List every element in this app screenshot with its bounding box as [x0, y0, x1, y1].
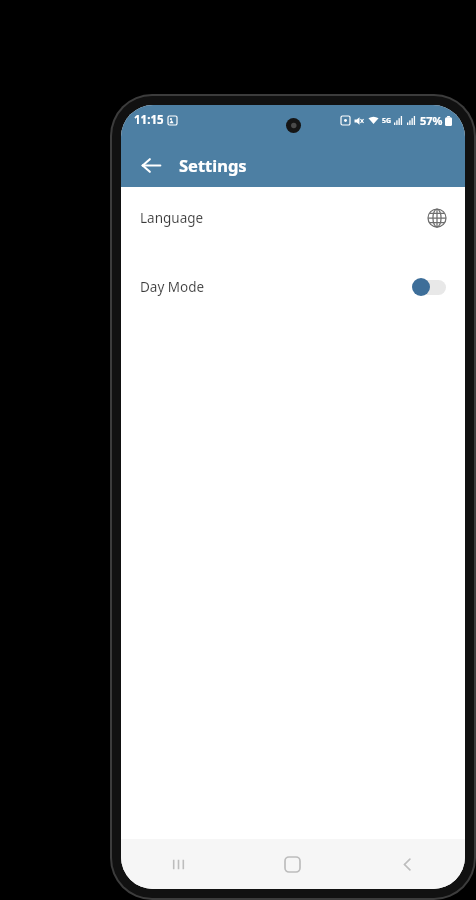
staticText: 11:15 [134, 112, 164, 128]
button[interactable]: Home [235, 839, 350, 889]
other: Language [425, 206, 449, 230]
button[interactable]: Back [133, 147, 169, 183]
button[interactable]: Day Mode toggle [411, 275, 449, 299]
button[interactable]: Recents [121, 839, 235, 889]
button[interactable]: Back [350, 839, 465, 889]
staticText: Day Mode [140, 278, 205, 296]
staticText: 57% [420, 113, 443, 128]
staticText: Settings [179, 154, 247, 176]
button[interactable]: Day Mode [121, 270, 465, 304]
button[interactable]: Language [121, 201, 465, 235]
staticText: 5G [382, 116, 392, 126]
staticText: Language [140, 209, 204, 227]
